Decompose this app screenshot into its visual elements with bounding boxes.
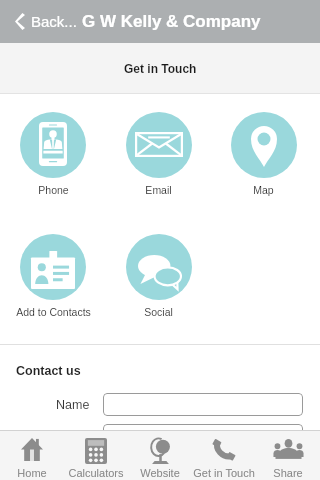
staticText: G W Kelly & Company	[82, 12, 261, 31]
staticText: Email	[145, 184, 172, 196]
staticText: Phone	[38, 184, 69, 196]
button[interactable]: Email	[106, 112, 211, 196]
button[interactable]: Social	[106, 234, 211, 318]
staticText: Add to Contacts	[16, 306, 91, 318]
staticText: Back...	[31, 13, 77, 30]
other: Back	[15, 13, 25, 30]
button[interactable]	[103, 424, 303, 447]
button[interactable]: Website	[128, 431, 192, 480]
button[interactable]: Home	[0, 431, 64, 480]
button[interactable]: Get in Touch	[192, 431, 256, 480]
staticText: Name	[56, 398, 90, 412]
button[interactable]: Share	[256, 431, 320, 480]
button[interactable]: Back	[11, 9, 81, 34]
button[interactable]: Phone	[0, 112, 106, 196]
staticText: Map	[253, 184, 274, 196]
button[interactable]: Map	[211, 112, 316, 196]
staticText: Website	[140, 467, 180, 479]
staticText: Share	[273, 467, 303, 479]
staticText: Social	[144, 306, 173, 318]
staticText: Home	[17, 467, 47, 479]
staticText: Get in Touch	[124, 62, 197, 75]
staticText: Get in Touch	[193, 467, 255, 479]
staticText: Email	[58, 429, 90, 443]
button[interactable]: Calculators	[64, 431, 128, 480]
staticText: Calculators	[68, 467, 124, 479]
button[interactable]: Add to Contacts	[0, 234, 106, 318]
button[interactable]	[103, 393, 303, 416]
staticText: Contact us	[16, 364, 81, 378]
